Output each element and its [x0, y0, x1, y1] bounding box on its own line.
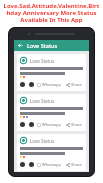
button[interactable]: Navigate up — [14, 40, 89, 51]
button[interactable]: Whatsapp — [36, 161, 62, 168]
button[interactable]: Love Status — [17, 94, 86, 131]
staticText: Share — [71, 82, 82, 87]
staticText: Love Status — [30, 98, 55, 104]
staticText: Share — [71, 122, 82, 127]
button[interactable]: Love Status — [17, 54, 86, 91]
button[interactable]: Copy — [20, 82, 25, 87]
staticText: Love Status — [30, 138, 55, 144]
button[interactable]: Whatsapp — [36, 121, 62, 128]
button[interactable]: Download — [29, 162, 34, 167]
button[interactable]: Share — [65, 81, 83, 88]
staticText: Whatsapp — [42, 82, 61, 87]
button[interactable]: Share — [65, 161, 83, 168]
button[interactable]: Navigate up — [17, 42, 24, 49]
button[interactable]: Download — [29, 122, 34, 127]
button[interactable]: Copy — [20, 162, 25, 167]
staticText: Share — [71, 162, 82, 167]
staticText: Whatsapp — [42, 162, 61, 167]
button[interactable]: Share — [65, 121, 83, 128]
button[interactable]: Love Status — [17, 134, 86, 171]
button[interactable]: Copy — [20, 122, 25, 127]
button[interactable]: Download — [29, 82, 34, 87]
staticText: Love Status — [27, 42, 58, 49]
button[interactable]: Whatsapp — [36, 81, 62, 88]
staticText: Whatsapp — [42, 122, 61, 127]
staticText: Love,Sad,Attitude,Valentine,Birthday Ann… — [3, 2, 100, 24]
staticText: Love Status — [30, 58, 55, 64]
